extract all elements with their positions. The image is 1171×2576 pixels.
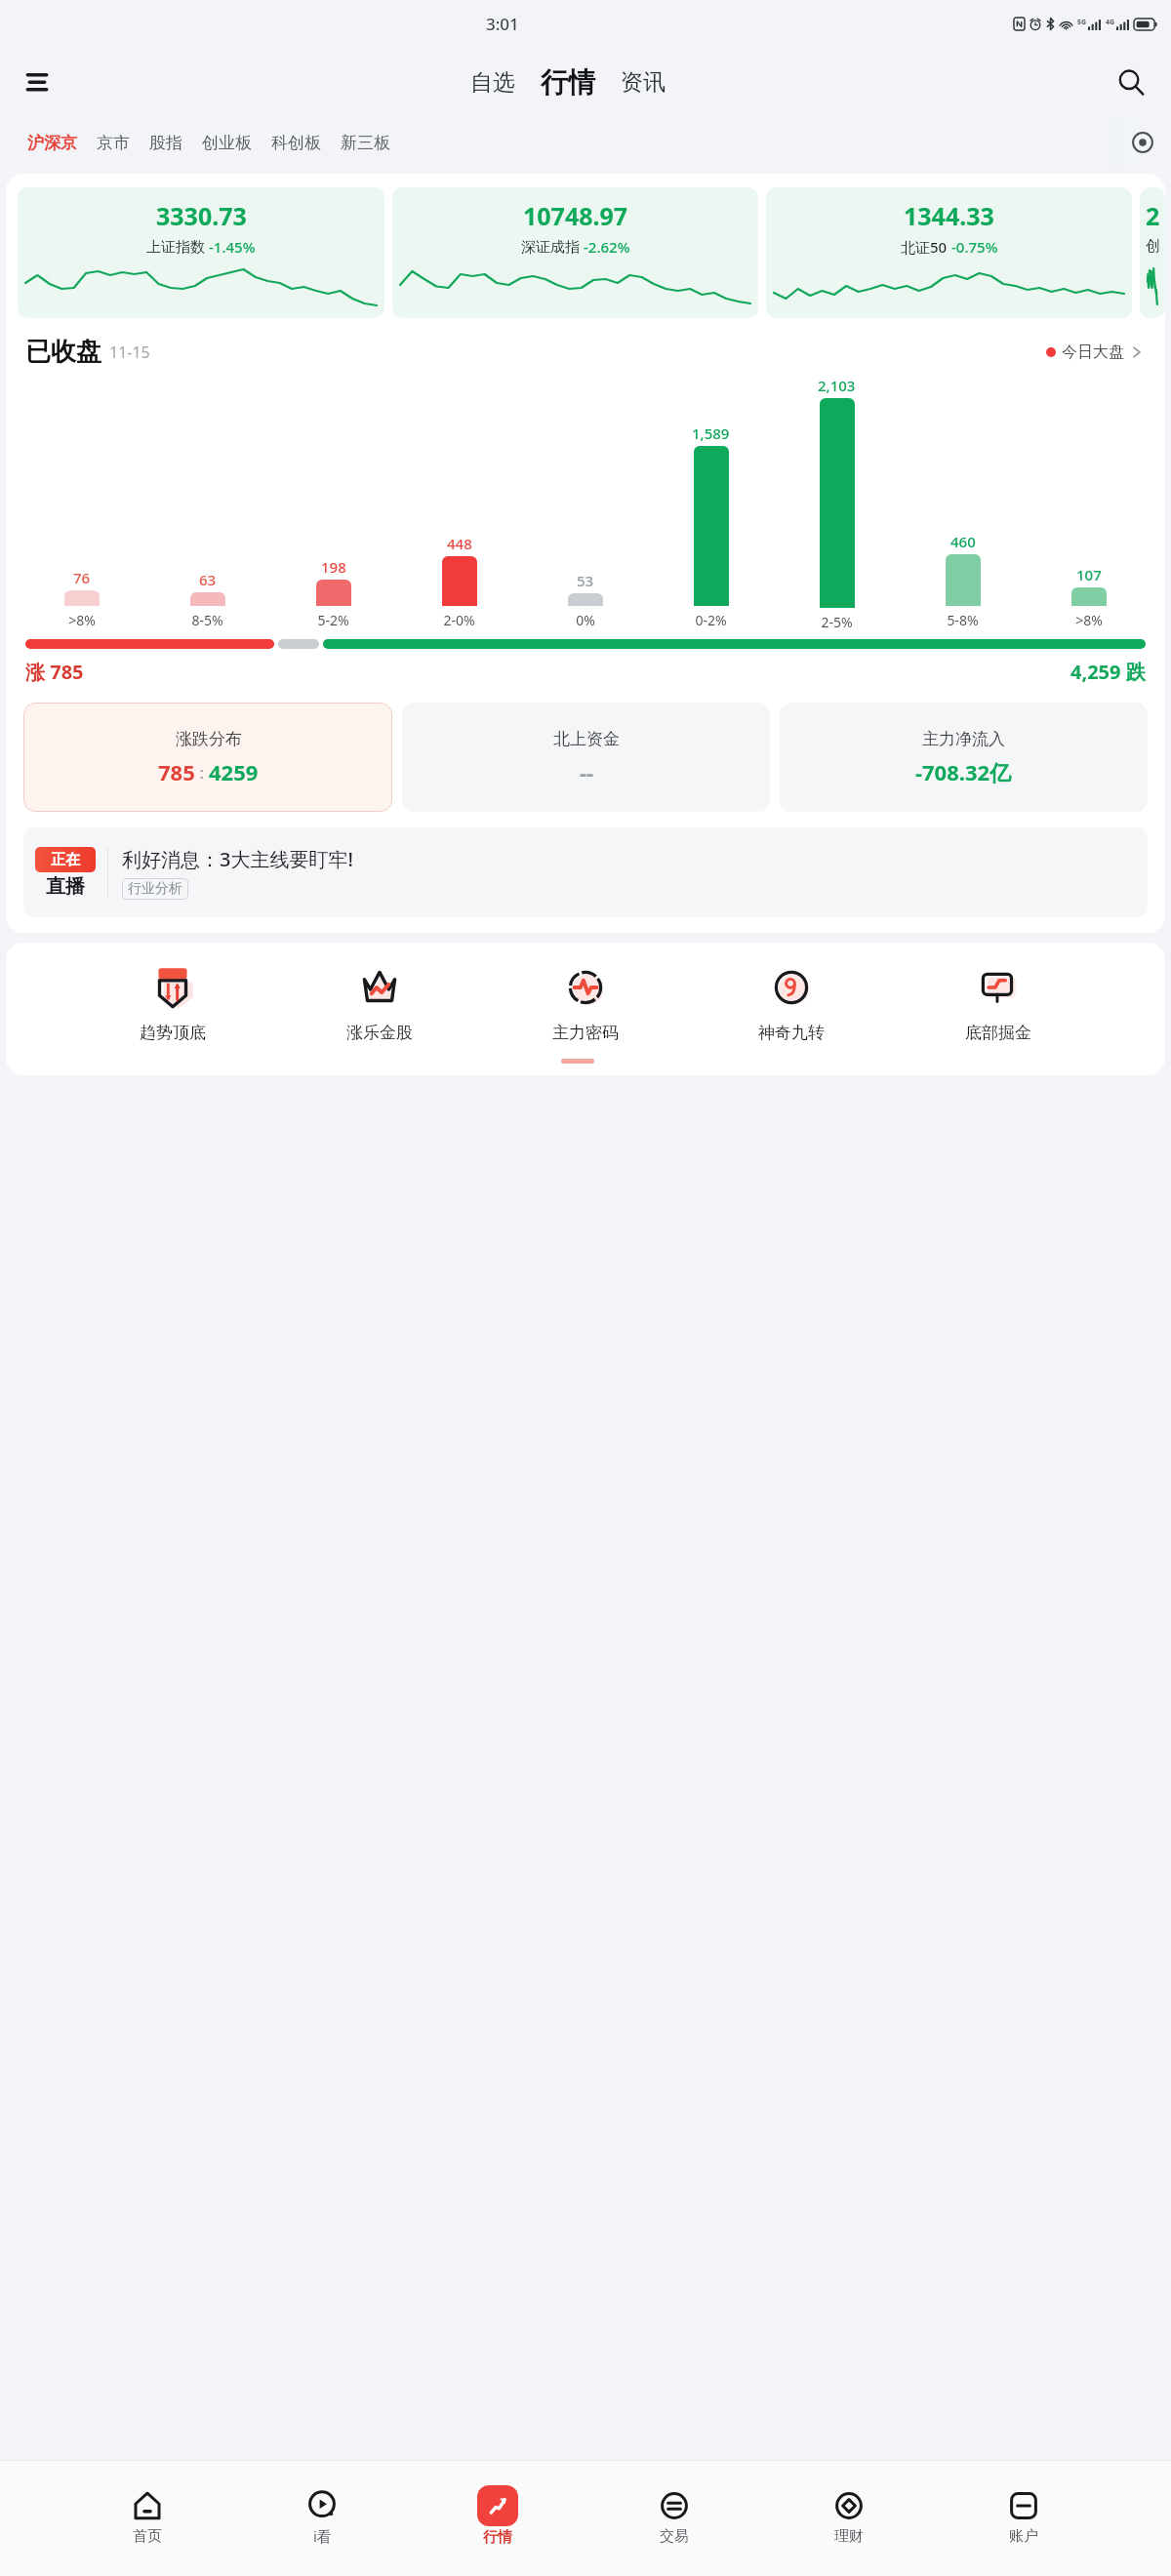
staticText: 账户 xyxy=(1009,2527,1038,2546)
button[interactable]: 76 xyxy=(20,568,144,629)
staticText: 1344.33 xyxy=(904,199,994,232)
button[interactable]: 首页 xyxy=(120,2482,175,2550)
staticText: 理财 xyxy=(834,2527,864,2546)
staticText: 正在 xyxy=(51,851,80,869)
button[interactable]: 10748.97 xyxy=(392,187,758,318)
button[interactable]: 主力净流入 xyxy=(780,703,1148,812)
staticText: 自选 xyxy=(470,68,515,97)
button[interactable]: 沪深京 xyxy=(18,127,87,159)
staticText: 今日大盘 xyxy=(1062,342,1124,362)
button[interactable]: 自选 xyxy=(461,62,525,102)
staticText: 63 xyxy=(199,570,217,589)
button[interactable]: 主力密码 xyxy=(546,960,625,1045)
staticText: -2.62% xyxy=(584,237,630,257)
staticText: 5-8% xyxy=(947,611,979,629)
staticText: 创业板 xyxy=(202,133,252,153)
staticText: 1,589 xyxy=(692,423,730,443)
staticText: -0.75% xyxy=(951,237,998,257)
staticText: i看 xyxy=(313,2526,332,2546)
staticText: 10748.97 xyxy=(523,199,628,232)
staticText: 首页 xyxy=(133,2527,162,2546)
button[interactable]: 198 xyxy=(270,557,396,629)
staticText: 趋势顶底 xyxy=(140,1023,206,1043)
button[interactable]: 神奇九转 xyxy=(752,960,830,1045)
button[interactable]: 行情 xyxy=(533,61,603,103)
button[interactable]: 底部掘金 xyxy=(959,960,1037,1045)
staticText: 2-0% xyxy=(443,611,475,629)
button[interactable]: Menu xyxy=(16,60,59,103)
button[interactable]: 1344.33 xyxy=(766,187,1132,318)
staticText: 利好消息：3大主线要盯牢! xyxy=(122,846,353,872)
button[interactable]: 2 xyxy=(1140,187,1165,318)
staticText: 资讯 xyxy=(621,68,666,97)
staticText: 行业分析 xyxy=(128,880,182,898)
button[interactable]: 448 xyxy=(396,534,522,629)
staticText: 0% xyxy=(576,611,595,629)
staticText: 198 xyxy=(321,557,346,577)
staticText: 上证指数 xyxy=(146,238,205,257)
staticText: 0-2% xyxy=(695,611,727,629)
staticText: 53 xyxy=(577,571,594,590)
button[interactable]: 理财 xyxy=(822,2482,876,2550)
staticText: 交易 xyxy=(660,2527,689,2546)
button[interactable]: 科创板 xyxy=(262,127,331,159)
staticText: 76 xyxy=(73,568,91,587)
staticText: 4259 xyxy=(209,757,259,786)
button[interactable]: 创业板 xyxy=(192,127,262,159)
staticText: -- xyxy=(580,757,594,786)
staticText: 行情 xyxy=(483,2528,512,2547)
staticText: >8% xyxy=(1075,611,1103,629)
staticText: 785 xyxy=(158,757,195,786)
staticText: 股指 xyxy=(149,133,182,153)
staticText: 11-15 xyxy=(109,342,150,363)
staticText: 3330.73 xyxy=(156,199,247,232)
staticText: -708.32亿 xyxy=(915,757,1012,786)
button[interactable]: 账户 xyxy=(996,2482,1051,2550)
staticText: 京市 xyxy=(97,133,130,153)
button[interactable]: 今日大盘 xyxy=(1042,339,1146,366)
button[interactable]: 1,589 xyxy=(648,423,774,629)
staticText: 北上资金 xyxy=(553,729,620,749)
staticText: 涨跌分布 xyxy=(176,729,242,749)
staticText: 3:01 xyxy=(486,13,519,35)
button[interactable]: 交易 xyxy=(647,2482,702,2550)
staticText: 448 xyxy=(447,534,472,553)
button[interactable]: 北上资金 xyxy=(402,703,770,812)
button[interactable]: Settings xyxy=(1126,126,1159,159)
staticText: 涨 785 xyxy=(25,659,84,685)
button[interactable]: 趋势顶底 xyxy=(134,960,212,1045)
staticText: 2-5% xyxy=(821,613,853,629)
button[interactable]: 2,103 xyxy=(774,376,900,629)
button[interactable]: 京市 xyxy=(87,127,140,159)
button[interactable]: 行情 xyxy=(469,2481,526,2551)
staticText: 创 xyxy=(1146,237,1160,256)
button[interactable]: 涨跌分布 xyxy=(23,703,392,812)
button[interactable]: 股指 xyxy=(140,127,192,159)
staticText: 已收盘 xyxy=(25,336,101,368)
staticText: 460 xyxy=(950,532,976,551)
button[interactable]: 107 xyxy=(1026,565,1151,629)
button[interactable]: 涨乐金股 xyxy=(341,960,419,1045)
button[interactable]: i看 xyxy=(295,2481,349,2550)
button[interactable]: 63 xyxy=(144,570,270,629)
button[interactable]: 3330.73 xyxy=(18,187,384,318)
button[interactable]: Search xyxy=(1109,60,1153,104)
staticText: 5G xyxy=(1077,18,1087,27)
staticText: 8-5% xyxy=(191,611,223,629)
button[interactable]: 正在 xyxy=(23,827,1148,917)
staticText: 主力净流入 xyxy=(922,729,1005,749)
staticText: 4G xyxy=(1106,18,1115,27)
staticText: 北证50 xyxy=(901,237,948,257)
button[interactable]: 新三板 xyxy=(331,127,400,159)
button[interactable]: 资讯 xyxy=(611,62,675,102)
staticText: 涨乐金股 xyxy=(346,1023,413,1043)
staticText: 神奇九转 xyxy=(758,1023,825,1043)
staticText: >8% xyxy=(68,611,96,629)
staticText: 行情 xyxy=(541,65,595,100)
staticText: 新三板 xyxy=(341,133,390,153)
button[interactable]: 53 xyxy=(522,571,648,629)
staticText: 深证成指 xyxy=(521,238,580,257)
staticText: 主力密码 xyxy=(552,1023,619,1043)
staticText: 4,259 跌 xyxy=(1070,659,1146,685)
button[interactable]: 460 xyxy=(900,532,1026,629)
